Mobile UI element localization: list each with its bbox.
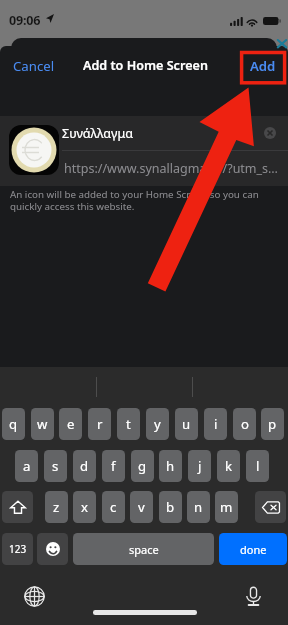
staticText: r <box>97 415 103 433</box>
button[interactable]: m <box>215 491 238 523</box>
button[interactable]: Add <box>240 48 286 84</box>
button[interactable]: Clear text <box>264 127 276 139</box>
staticText: t <box>126 415 131 433</box>
button[interactable]: q <box>2 408 25 440</box>
staticText: done <box>240 542 267 557</box>
button[interactable]: f <box>102 450 125 482</box>
button[interactable]: done <box>219 533 287 565</box>
button[interactable]: g <box>131 450 154 482</box>
staticText: j <box>198 457 202 475</box>
button[interactable]: Cancel <box>3 48 65 84</box>
staticText: h <box>166 457 175 475</box>
button[interactable]: c <box>102 491 125 523</box>
staticText: v <box>138 498 145 516</box>
staticText: q <box>9 415 18 433</box>
button[interactable]: Switch keyboard <box>22 584 46 608</box>
staticText: Add <box>250 57 276 75</box>
button[interactable]: o <box>233 408 256 440</box>
button[interactable]: space <box>73 533 214 565</box>
button[interactable]: i <box>204 408 227 440</box>
staticText: g <box>138 457 147 475</box>
staticText: space <box>129 542 159 557</box>
staticText: c <box>110 498 117 516</box>
button[interactable]: Shift <box>2 491 33 523</box>
staticText: e <box>67 415 75 433</box>
staticText: z <box>53 498 60 516</box>
button[interactable]: w <box>31 408 54 440</box>
button[interactable]: b <box>159 491 182 523</box>
staticText: b <box>166 498 175 516</box>
button[interactable]: Emoji <box>37 533 68 565</box>
staticText: l <box>256 457 260 475</box>
staticText: s <box>52 457 59 475</box>
button[interactable]: d <box>73 450 96 482</box>
staticText: x <box>81 498 88 516</box>
staticText: o <box>241 415 249 433</box>
staticText: Συνάλλαγμα <box>62 125 264 142</box>
button[interactable]: t <box>117 408 140 440</box>
button[interactable]: r <box>88 408 111 440</box>
staticText: f <box>111 457 116 475</box>
button[interactable]: Dictation <box>241 584 265 608</box>
button[interactable]: h <box>159 450 182 482</box>
button[interactable]: l <box>246 450 269 482</box>
staticText: y <box>154 415 161 433</box>
button[interactable]: p <box>261 408 284 440</box>
staticText: u <box>182 415 191 433</box>
staticText: a <box>23 457 31 475</box>
button[interactable]: j <box>188 450 211 482</box>
staticText: p <box>268 415 277 433</box>
button[interactable]: e <box>59 408 82 440</box>
button[interactable]: s <box>44 450 67 482</box>
button[interactable]: z <box>45 491 68 523</box>
staticText: d <box>80 457 89 475</box>
button[interactable]: u <box>175 408 198 440</box>
staticText: n <box>194 498 203 516</box>
staticText: 123 <box>9 542 27 556</box>
staticText: k <box>225 457 233 475</box>
staticText: Add to Home Screen <box>83 57 208 74</box>
button[interactable]: v <box>130 491 153 523</box>
button[interactable]: 123 <box>2 533 33 565</box>
staticText: 09:06 <box>9 12 41 29</box>
staticText: w <box>37 415 48 433</box>
button[interactable]: k <box>217 450 240 482</box>
button[interactable]: a <box>15 450 38 482</box>
staticText: Cancel <box>13 57 55 75</box>
staticText: i <box>214 415 218 433</box>
button[interactable]: n <box>187 491 210 523</box>
staticText: m <box>220 498 233 516</box>
button[interactable]: Backspace <box>255 491 286 523</box>
staticText: https://www.synallagma.gr/?utm_s… <box>64 160 278 177</box>
button[interactable]: x <box>73 491 96 523</box>
staticText: An icon will be added to your Home Scree… <box>10 188 278 213</box>
button[interactable]: y <box>146 408 169 440</box>
